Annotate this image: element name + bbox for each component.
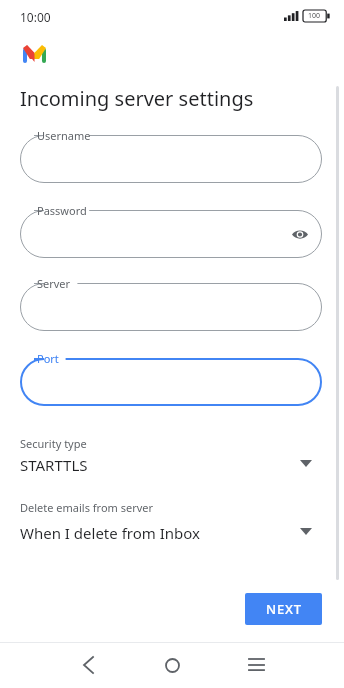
button[interactable]: Back: [60, 642, 116, 688]
staticText: Security type: [20, 436, 87, 451]
staticText: Incoming server settings: [20, 85, 254, 112]
staticText: 100: [308, 11, 321, 21]
staticText: Delete emails from server: [20, 500, 154, 515]
staticText: NEXT: [266, 600, 302, 618]
button[interactable]: Password: [20, 210, 322, 258]
button[interactable]: NEXT: [245, 593, 322, 625]
button[interactable]: Username: [20, 135, 322, 183]
button[interactable]: Security type: [20, 436, 322, 477]
button[interactable]: Server: [20, 283, 322, 331]
staticText: 10:00: [20, 9, 51, 25]
button[interactable]: Show password: [288, 222, 312, 246]
staticText: When I delete from Inbox: [20, 523, 200, 543]
button[interactable]: Home: [144, 642, 200, 688]
button[interactable]: Port: [20, 358, 322, 406]
button[interactable]: Recent apps: [228, 642, 284, 688]
staticText: Password: [37, 203, 87, 218]
button[interactable]: Delete emails from server: [20, 500, 322, 545]
staticText: Port: [37, 351, 59, 366]
staticText: STARTTLS: [20, 455, 88, 475]
staticText: Server: [37, 276, 71, 291]
staticText: Username: [37, 128, 91, 143]
